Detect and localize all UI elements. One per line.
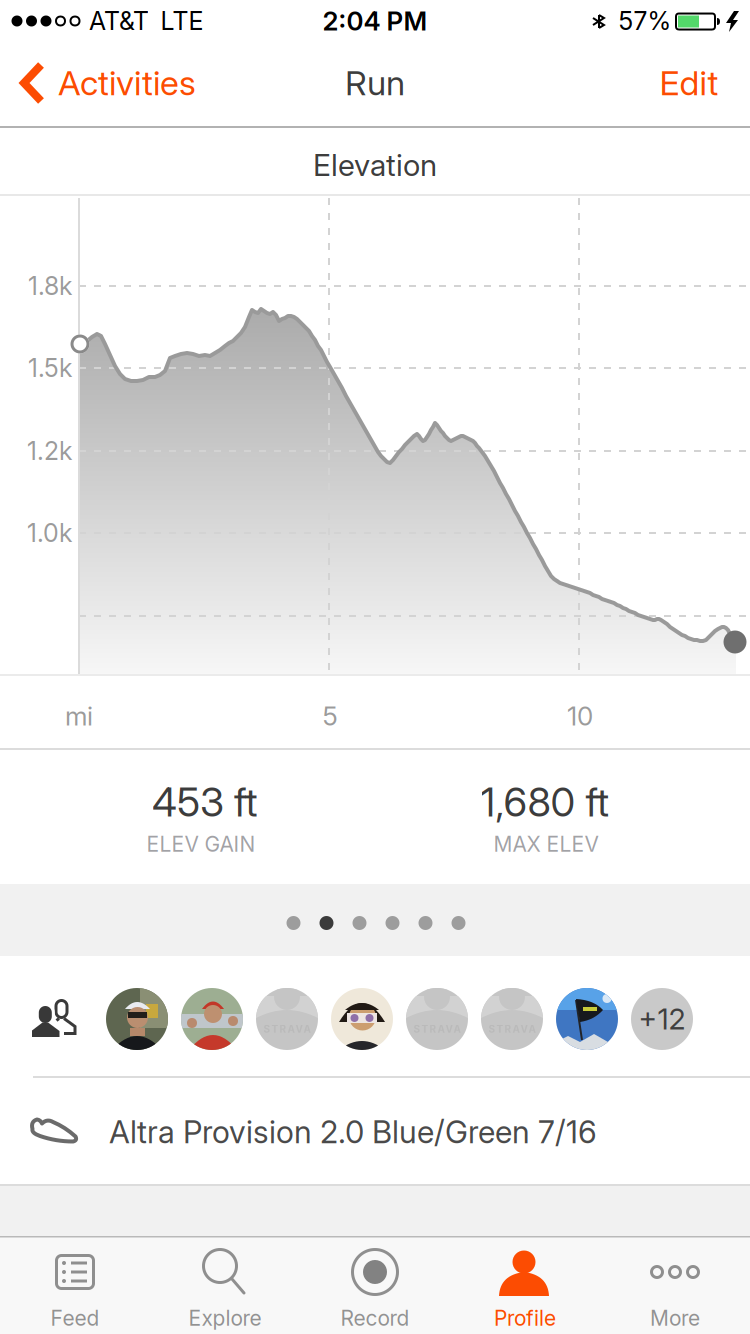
staticText: ELEV GAIN <box>146 832 255 856</box>
staticText: STRAVA <box>263 1023 310 1035</box>
staticText: 1,680 ft <box>480 778 609 826</box>
staticText: AT&T <box>89 6 149 36</box>
button[interactable]: Record <box>300 1236 450 1334</box>
staticText: 2:04 PM <box>322 6 427 36</box>
button[interactable]: Feed <box>0 1236 150 1334</box>
staticText: Feed <box>50 1306 99 1330</box>
staticText: Run <box>345 63 405 103</box>
button[interactable]: More <box>600 1236 750 1334</box>
staticText: +12 <box>638 1002 685 1036</box>
staticText: 1.5k <box>28 353 72 383</box>
staticText: 5 <box>322 701 337 731</box>
staticText: Altra Provision 2.0 Blue/Green 7/16 <box>109 1114 597 1150</box>
staticText: LTE <box>160 6 203 36</box>
staticText: 1.8k <box>28 271 72 301</box>
staticText: 453 ft <box>152 778 258 826</box>
staticText: Edit <box>659 63 718 103</box>
button[interactable]: Athlete 4 <box>331 988 393 1050</box>
staticText: Activities <box>58 63 196 103</box>
button[interactable]: Athlete 7 <box>556 988 618 1050</box>
staticText: Record <box>340 1306 409 1330</box>
button[interactable]: Altra Provision 2.0 Blue/Green 7/16 <box>0 1078 750 1186</box>
staticText: STRAVA <box>488 1023 535 1035</box>
staticText: More <box>650 1306 700 1330</box>
staticText: STRAVA <box>413 1023 460 1035</box>
staticText: 57% <box>618 6 671 36</box>
staticText: Elevation <box>313 147 437 183</box>
button[interactable]: Explore <box>150 1236 300 1334</box>
button[interactable]: Athlete 2 <box>181 988 243 1050</box>
button[interactable]: 12 more athletes <box>631 988 693 1050</box>
button[interactable]: Athlete 5 <box>406 988 468 1050</box>
button[interactable]: Edit <box>659 63 718 103</box>
staticText: mi <box>65 701 93 731</box>
staticText: 10 <box>567 701 593 731</box>
staticText: 1.2k <box>27 436 72 466</box>
button[interactable]: Activities <box>20 62 196 104</box>
button[interactable]: Profile <box>450 1236 600 1334</box>
staticText: Profile <box>494 1306 556 1330</box>
button[interactable]: Athlete 6 <box>481 988 543 1050</box>
button[interactable]: Athlete 3 <box>256 988 318 1050</box>
button[interactable]: Athlete 1 <box>106 988 168 1050</box>
staticText: Explore <box>188 1306 261 1330</box>
staticText: MAX ELEV <box>493 832 598 856</box>
staticText: 1.0k <box>27 518 72 548</box>
